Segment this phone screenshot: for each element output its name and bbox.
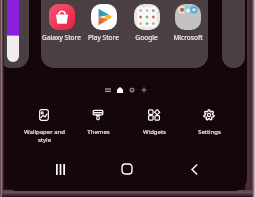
staticText: Microsoft — [173, 33, 203, 42]
button[interactable]: Play Store — [75, 4, 132, 42]
button[interactable]: Recents — [48, 157, 72, 181]
staticText: Google — [135, 33, 158, 42]
button[interactable]: Themes — [72, 104, 124, 136]
button[interactable]: Apps list — [102, 85, 114, 94]
button[interactable]: Add page — [138, 85, 150, 94]
button[interactable]: Home — [115, 157, 139, 181]
button[interactable]: Settings — [183, 104, 235, 136]
staticText: Settings — [198, 128, 221, 136]
staticText: Play Store — [88, 33, 119, 42]
button[interactable]: Google — [118, 4, 175, 42]
button[interactable]: Wallpaper and style — [18, 104, 70, 144]
staticText: Galaxy Store — [42, 33, 81, 42]
button[interactable]: Second page — [126, 85, 138, 94]
button[interactable]: Galaxy Store — [33, 4, 90, 42]
button[interactable]: Microsoft — [159, 4, 216, 42]
button[interactable]: Widgets — [128, 104, 180, 136]
button[interactable]: Back — [182, 157, 206, 181]
staticText: Wallpaper and style — [24, 128, 65, 144]
button[interactable]: Home page — [114, 85, 126, 94]
staticText: Themes — [87, 128, 110, 136]
staticText: Widgets — [143, 128, 166, 136]
